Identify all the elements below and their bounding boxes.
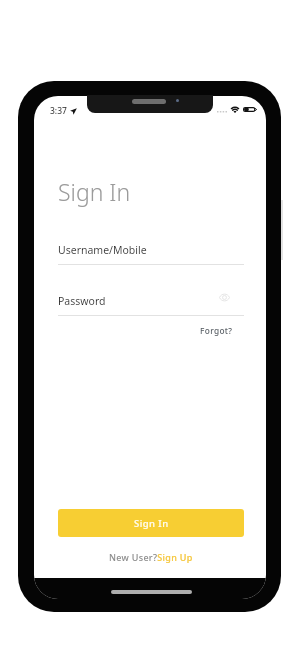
staticText: Sign In [58, 176, 131, 207]
staticText: Sign In [134, 517, 169, 530]
staticText: Password [58, 294, 106, 308]
button[interactable]: Show password [219, 293, 230, 302]
button[interactable]: Forgot? [58, 325, 233, 336]
staticText: 3:37 [50, 105, 67, 117]
staticText: New User?Sign Up [109, 551, 193, 563]
button[interactable]: Sign In [58, 509, 244, 537]
staticText: Username/Mobile [58, 243, 147, 257]
staticText: Forgot? [200, 325, 233, 336]
button[interactable]: New User?Sign Up [58, 551, 244, 563]
